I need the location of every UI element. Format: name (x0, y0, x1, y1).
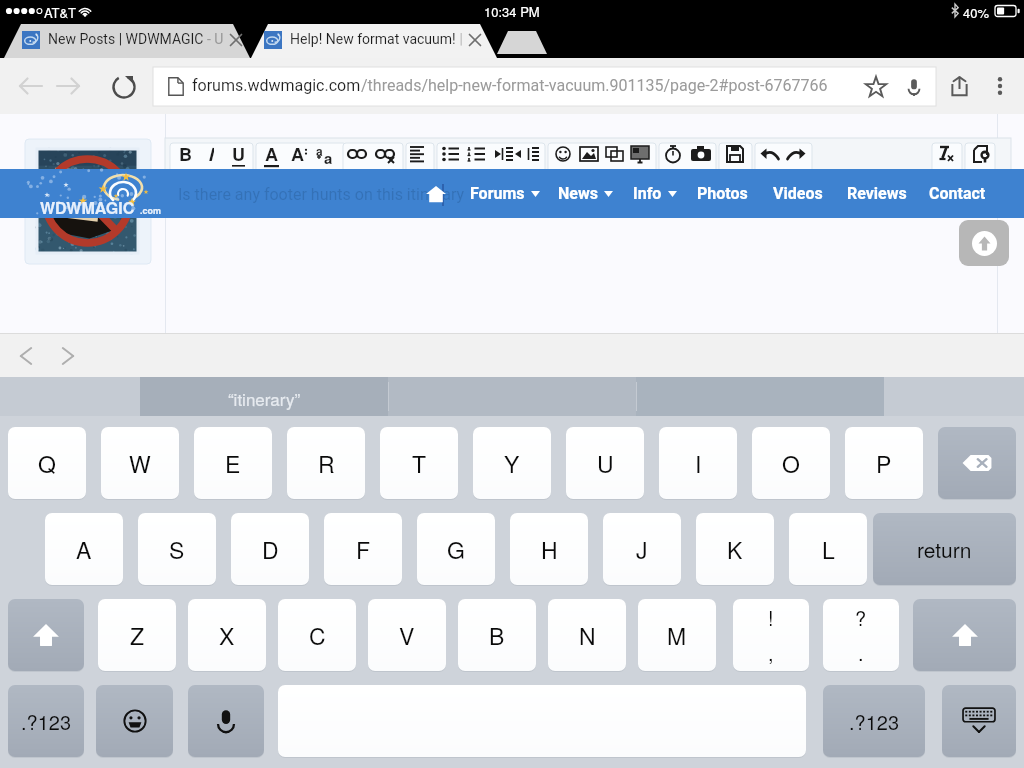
staticText: , (768, 638, 774, 667)
button[interactable]: a (319, 145, 337, 169)
button[interactable]: Timer (662, 143, 684, 165)
staticText: S (169, 533, 185, 566)
button[interactable]: Reviews (847, 178, 907, 209)
button[interactable]: Y (473, 427, 551, 499)
button[interactable]: C (278, 599, 356, 671)
button[interactable]: Emoji keyboard (96, 685, 173, 757)
button[interactable]: Redo (785, 143, 807, 165)
button[interactable]: Insert image (578, 143, 600, 165)
button[interactable]: return (873, 513, 1016, 585)
button[interactable]: Z (98, 599, 176, 671)
staticText: ? (855, 603, 867, 632)
button[interactable]: Emoji (552, 143, 574, 165)
button[interactable]: News (558, 178, 613, 209)
button[interactable]: Share (944, 71, 975, 102)
button[interactable]: N (548, 599, 626, 671)
button[interactable]: Camera (690, 143, 712, 165)
staticText: WDWMAGIC (40, 196, 135, 219)
button[interactable]: Voice search (901, 73, 927, 101)
button[interactable]: A (288, 141, 306, 165)
button[interactable]: a (310, 138, 328, 162)
button[interactable]: Forward (46, 65, 90, 107)
button[interactable]: More options (986, 69, 1014, 103)
button[interactable]: O (752, 427, 830, 499)
button[interactable]: G (417, 513, 495, 585)
staticText: O (782, 447, 800, 480)
button[interactable]: Insert media (629, 143, 651, 165)
button[interactable]: Backspace (938, 427, 1016, 499)
button[interactable]: U (229, 141, 247, 165)
button[interactable]: F (324, 513, 402, 585)
button[interactable]: Hide keyboard (942, 685, 1016, 757)
button[interactable]: S (138, 513, 216, 585)
staticText: 10:34 PM (484, 2, 540, 21)
button[interactable]: Font size (292, 143, 314, 165)
button[interactable]: L (789, 513, 867, 585)
button[interactable]: Next (50, 338, 86, 374)
button[interactable]: Scroll to top (959, 220, 1009, 266)
button[interactable]: X (188, 599, 266, 671)
button[interactable]: Undo (759, 143, 781, 165)
button[interactable]: Outdent (519, 143, 541, 165)
button[interactable]: Forums (470, 178, 540, 209)
button[interactable]: Back (9, 65, 53, 107)
button[interactable]: Info (633, 178, 677, 209)
button[interactable]: WDWMAGIC home (28, 168, 180, 220)
button[interactable]: .?123 (8, 685, 84, 757)
button[interactable]: Help! New format vacuum! (290, 31, 463, 47)
button[interactable]: B (458, 599, 536, 671)
button[interactable]: P (845, 427, 923, 499)
button[interactable]: Gallery (604, 143, 626, 165)
button[interactable]: Home (426, 185, 446, 203)
button[interactable]: Close tab (464, 29, 486, 51)
button[interactable]: Shift (8, 599, 84, 671)
button[interactable]: forums.wdwmagic.com (153, 67, 936, 106)
button[interactable]: Q (8, 427, 86, 499)
button[interactable]: B (176, 141, 194, 165)
button[interactable]: M (638, 599, 716, 671)
button[interactable]: Link (346, 143, 368, 165)
button[interactable]: .?123 (823, 685, 925, 757)
button[interactable]: Numbered list (466, 143, 488, 165)
button[interactable]: A (262, 141, 280, 165)
button[interactable]: D (231, 513, 309, 585)
button[interactable]: Bookmark (864, 75, 888, 99)
button[interactable]: Photos (697, 178, 748, 209)
staticText: H (541, 533, 558, 566)
button[interactable]: Reload (102, 65, 146, 107)
button[interactable]: Save (724, 143, 746, 165)
button[interactable]: Dictation (188, 685, 264, 757)
button[interactable]: T (380, 427, 458, 499)
button[interactable]: K (696, 513, 774, 585)
button[interactable]: Case (306, 143, 328, 165)
staticText: A (291, 141, 304, 165)
button[interactable]: Drafts (970, 143, 992, 165)
staticText: T (412, 447, 427, 480)
button[interactable]: Previous (8, 338, 44, 374)
button[interactable]: Contact (929, 178, 986, 209)
button[interactable]: Remove formatting (935, 143, 957, 165)
button[interactable]: I (202, 141, 220, 165)
button[interactable]: Bullet list (440, 143, 462, 165)
button[interactable]: Close tab (225, 29, 247, 51)
button[interactable]: Shift (913, 599, 1016, 671)
button[interactable]: R (287, 427, 365, 499)
button[interactable]: ! (733, 599, 809, 671)
staticText: U (597, 447, 614, 480)
staticText: W (129, 447, 151, 480)
button[interactable]: Unlink (374, 143, 396, 165)
button[interactable]: Videos (773, 178, 823, 209)
button[interactable]: I (659, 427, 737, 499)
button[interactable]: J (603, 513, 681, 585)
button[interactable]: E (194, 427, 272, 499)
button[interactable]: New Posts | WDWMAGIC (48, 31, 224, 47)
button[interactable]: Align (406, 143, 428, 165)
button[interactable]: U (566, 427, 644, 499)
button[interactable]: A (45, 513, 123, 585)
button[interactable]: ? (823, 599, 899, 671)
button[interactable]: H (510, 513, 588, 585)
button[interactable]: Indent (493, 143, 515, 165)
button[interactable]: V (368, 599, 446, 671)
button[interactable]: W (101, 427, 179, 499)
